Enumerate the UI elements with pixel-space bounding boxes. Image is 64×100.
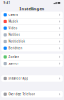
staticText: Notitieblok — [8, 40, 24, 43]
button[interactable]: Zoeken — [1, 54, 63, 60]
staticText: Notities — [8, 33, 19, 37]
staticText: Video — [8, 26, 17, 30]
button[interactable]: Berichten — [1, 45, 63, 51]
staticText: Over deze Telefoon — [8, 92, 35, 96]
staticText: Installeer App — [8, 77, 28, 80]
button[interactable]: Over deze Telefoon — [1, 91, 63, 97]
staticText: Berichten — [8, 46, 22, 50]
staticText: Camera — [8, 13, 17, 16]
button[interactable]: Notities — [1, 32, 63, 38]
button[interactable]: Video — [1, 25, 63, 31]
button[interactable]: Camera — [1, 12, 63, 18]
staticText: Zoeken — [8, 55, 19, 59]
staticText: Scanner — [8, 62, 18, 65]
staticText: 9:41 — [3, 1, 10, 5]
staticText: Muziek — [8, 20, 17, 23]
staticText: Instellingen — [19, 6, 44, 11]
button[interactable]: Muziek — [1, 18, 63, 25]
button[interactable]: Scanner — [1, 60, 63, 67]
button[interactable]: Notitieblok — [1, 38, 63, 45]
button[interactable]: Installeer App — [1, 75, 63, 82]
